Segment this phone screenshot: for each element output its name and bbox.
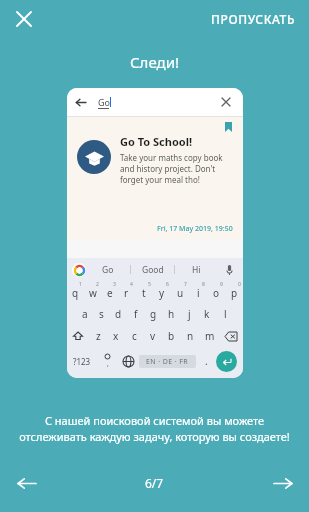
button[interactable]: k <box>198 303 216 325</box>
staticText: 9 <box>220 281 223 288</box>
button[interactable]: c <box>125 325 143 347</box>
button[interactable]: n <box>181 325 200 347</box>
button[interactable]: s <box>93 303 110 325</box>
staticText: b <box>168 329 175 343</box>
staticText: 5 <box>148 281 151 288</box>
button[interactable]: v <box>143 325 162 347</box>
staticText: 3 <box>113 281 116 288</box>
staticText: m <box>205 329 215 343</box>
staticText: , <box>107 359 109 369</box>
button[interactable]: m <box>200 325 219 347</box>
button[interactable]: Change language <box>117 347 139 375</box>
button[interactable]: b <box>162 325 181 347</box>
staticText: 8 <box>202 281 205 288</box>
button[interactable]: Next <box>265 465 301 501</box>
staticText: 6 <box>166 281 169 288</box>
staticText: 6/7 <box>145 475 164 491</box>
button[interactable]: 4 <box>118 281 135 303</box>
button[interactable]: . <box>196 347 216 375</box>
staticText: h <box>168 307 175 321</box>
staticText: 1 <box>79 281 82 288</box>
staticText: ПРОПУСКАТЬ <box>211 11 295 27</box>
staticText: c <box>132 329 137 343</box>
staticText: r <box>124 286 129 300</box>
staticText: 2 <box>96 281 99 288</box>
button[interactable]: j <box>180 303 198 325</box>
staticText: Take your maths copy book and history pr… <box>120 152 233 185</box>
staticText: e <box>107 286 113 300</box>
button[interactable]: 7 <box>171 281 189 303</box>
staticText: j <box>188 307 191 321</box>
staticText: f <box>134 307 138 321</box>
staticText: 0 <box>238 281 241 288</box>
button[interactable]: Go <box>86 258 130 281</box>
button[interactable]: ПРОПУСКАТЬ <box>207 7 299 31</box>
staticText: u <box>177 286 184 300</box>
button[interactable]: Go <box>67 88 243 116</box>
staticText: Fri, 17 May 2019, 19:50 <box>157 224 233 234</box>
staticText: . <box>205 354 208 368</box>
button[interactable]: 2 <box>84 281 101 303</box>
staticText: Good <box>142 264 164 276</box>
button[interactable]: Close <box>8 3 40 35</box>
staticText: d <box>115 307 122 321</box>
button[interactable]: 1 <box>67 281 84 303</box>
button[interactable]: Enter <box>216 351 237 372</box>
button[interactable]: Voice input <box>218 258 240 281</box>
button[interactable]: 8 <box>189 281 207 303</box>
staticText: Go <box>98 96 110 108</box>
button[interactable]: Go To School! <box>67 117 243 239</box>
button[interactable]: ?123 <box>67 347 97 375</box>
staticText: Go To School! <box>120 134 193 149</box>
button[interactable]: 0 <box>225 281 243 303</box>
button[interactable]: l <box>216 303 234 325</box>
staticText: С нашей поисковой системой вы можете отс… <box>10 413 299 444</box>
button[interactable]: 9 <box>207 281 225 303</box>
button[interactable]: Emoji <box>97 347 117 375</box>
staticText: w <box>89 286 97 300</box>
staticText: Hi <box>192 264 201 276</box>
staticText: EN · DE · FR <box>146 357 189 367</box>
staticText: a <box>82 307 88 321</box>
staticText: 7 <box>184 281 187 288</box>
button[interactable]: a <box>76 303 93 325</box>
staticText: s <box>99 307 104 321</box>
button[interactable]: 6 <box>153 281 171 303</box>
button[interactable]: Shift <box>67 325 89 347</box>
button[interactable]: f <box>127 303 144 325</box>
staticText: t <box>142 286 146 300</box>
button[interactable]: Previous <box>8 465 44 501</box>
staticText: Следи! <box>130 52 179 72</box>
button[interactable]: Google <box>72 263 86 277</box>
button[interactable]: Clear <box>216 92 236 112</box>
staticText: z <box>96 329 101 343</box>
button[interactable]: Backspace <box>219 325 243 347</box>
button[interactable]: 3 <box>101 281 118 303</box>
button[interactable]: d <box>110 303 127 325</box>
button[interactable]: Good <box>131 258 174 281</box>
staticText: q <box>72 286 79 300</box>
staticText: Go <box>102 264 114 276</box>
staticText: v <box>150 329 156 343</box>
staticText: n <box>187 329 194 343</box>
button[interactable]: x <box>107 325 125 347</box>
staticText: i <box>197 286 200 300</box>
button[interactable]: h <box>162 303 180 325</box>
button[interactable]: EN · DE · FR <box>139 355 196 368</box>
button[interactable]: z <box>89 325 107 347</box>
button[interactable]: 5 <box>135 281 153 303</box>
staticText: ?123 <box>73 356 91 367</box>
button[interactable]: Hi <box>175 258 218 281</box>
staticText: o <box>213 286 220 300</box>
staticText: x <box>113 329 119 343</box>
staticText: 4 <box>130 281 133 288</box>
button[interactable]: g <box>144 303 162 325</box>
staticText: k <box>204 307 210 321</box>
staticText: y <box>159 286 165 300</box>
staticText: l <box>224 307 227 321</box>
staticText: p <box>231 286 238 300</box>
staticText: g <box>150 307 157 321</box>
